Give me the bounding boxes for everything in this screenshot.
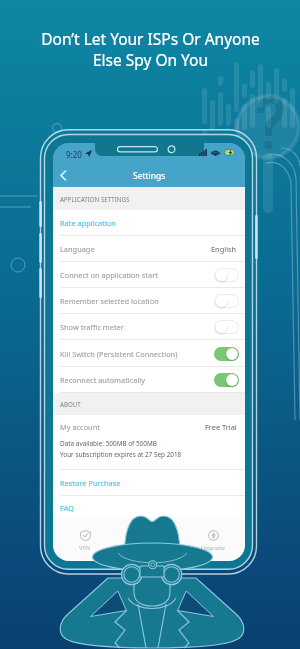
staticText: Settings (133, 170, 166, 182)
other: Back (60, 170, 66, 181)
staticText: FAQ (60, 503, 75, 513)
button[interactable]: Restore Purchase (53, 470, 245, 496)
staticText: VPN (79, 544, 91, 552)
staticText: 9:20 (66, 149, 82, 160)
staticText: Connect on application start (60, 270, 158, 280)
staticText: Data available: 500MB of 500MB (60, 439, 157, 448)
staticText: My account (60, 422, 100, 432)
staticText: Show traffic meter (60, 322, 124, 332)
button[interactable]: Location (124, 530, 174, 552)
button[interactable]: Reconnect automatically (53, 367, 245, 393)
button[interactable]: Kill Switch (Persistent Connection) (53, 340, 245, 367)
button[interactable]: Show traffic meter (53, 314, 245, 340)
button[interactable]: Toggle off (214, 268, 239, 282)
staticText: APPLICATION SETTINGS (60, 195, 130, 203)
staticText: Rate application (60, 218, 116, 228)
staticText: Reconnect automatically (60, 375, 145, 385)
staticText: Kill Switch (Persistent Connection) (60, 349, 178, 359)
staticText: Don’t Let Your ISPs Or Anyone Else Spy O… (41, 28, 260, 71)
button[interactable]: Language (53, 236, 245, 262)
staticText: Remember selected location (60, 296, 159, 306)
staticText: Restore Purchase (60, 478, 121, 488)
button[interactable]: Remember selected location (53, 288, 245, 314)
staticText: Your subscription expires at 27 Sep 2018 (60, 450, 182, 459)
button[interactable]: FAQ (53, 496, 245, 520)
button[interactable]: Upgrade (188, 530, 238, 552)
button[interactable]: VPN (60, 530, 110, 552)
button[interactable]: My account (53, 415, 245, 470)
staticText: English (211, 244, 237, 254)
staticText: Free Trial (205, 422, 237, 432)
button[interactable]: Rate application (53, 210, 245, 236)
button[interactable]: Toggle on (214, 347, 239, 361)
staticText: ABOUT (60, 400, 81, 408)
button[interactable]: Connect on application start (53, 262, 245, 288)
staticText: Language (60, 244, 95, 254)
staticText: Upgrade (201, 544, 225, 552)
button[interactable]: Toggle off (214, 320, 239, 334)
button[interactable]: Back (53, 164, 245, 187)
button[interactable]: Toggle on (214, 373, 239, 387)
button[interactable]: Toggle off (214, 294, 239, 308)
